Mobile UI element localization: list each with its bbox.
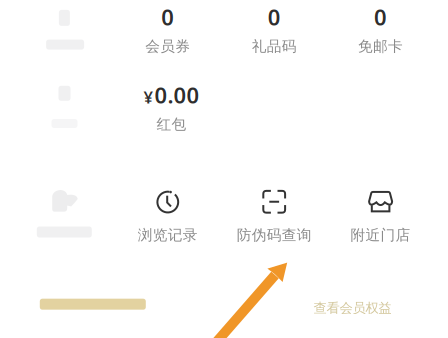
staticText: ¥ [143, 86, 153, 108]
staticText: 红包 [156, 115, 186, 133]
button[interactable]: 防伪码查询 [221, 189, 327, 245]
staticText: 查看会员权益 [313, 300, 391, 316]
staticText: 0 [161, 2, 174, 32]
staticText: 0 [374, 2, 387, 32]
staticText: 0.00 [154, 80, 199, 110]
staticText: 礼品码 [252, 37, 297, 55]
staticText: 浏览记录 [138, 226, 198, 244]
button[interactable]: 0 [329, 0, 433, 60]
staticText: 附近门店 [351, 226, 411, 244]
button[interactable]: 0 [222, 0, 326, 60]
button[interactable]: ¥ [101, 76, 241, 138]
staticText: 免邮卡 [358, 37, 403, 55]
button[interactable]: 附近门店 [328, 189, 434, 245]
staticText: 防伪码查询 [237, 226, 312, 244]
button[interactable]: 查看会员权益 [297, 297, 407, 319]
button[interactable]: 0 [116, 0, 220, 60]
staticText: 会员券 [145, 37, 190, 55]
button[interactable]: 浏览记录 [115, 189, 221, 245]
staticText: 0 [268, 2, 281, 32]
